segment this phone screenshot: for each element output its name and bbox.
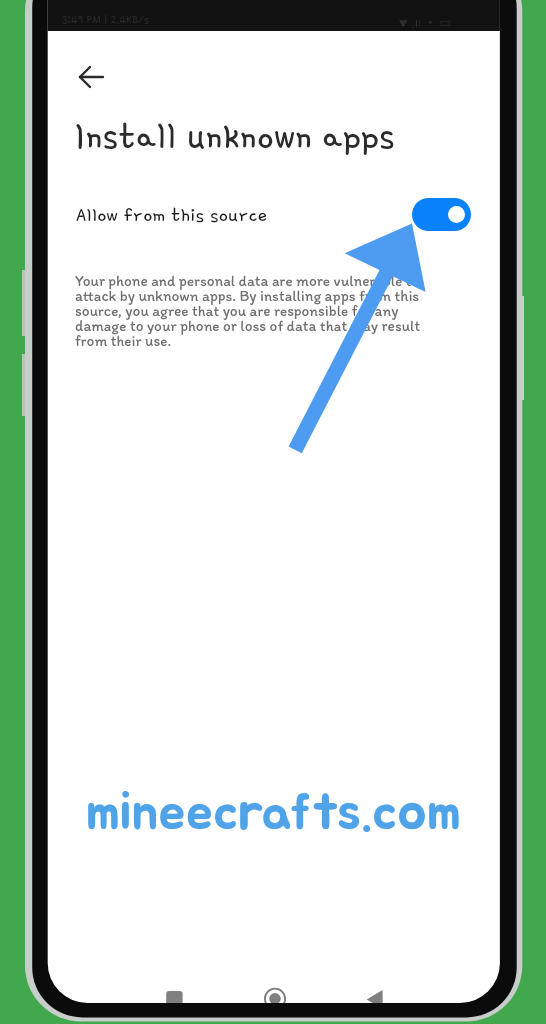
- staticText: 3:49 PM | 2.4KB/s: [62, 13, 150, 26]
- button[interactable]: Allow from this source: [412, 198, 471, 231]
- staticText: mineecrafts.com: [86, 786, 466, 840]
- staticText: Your phone and personal data are more vu…: [75, 271, 455, 350]
- staticText: Allow from this source: [76, 203, 268, 226]
- staticText: Install unknown apps: [73, 114, 395, 156]
- staticText: ▼ .ıl • ▭: [398, 13, 452, 31]
- button[interactable]: Back: [74, 57, 114, 97]
